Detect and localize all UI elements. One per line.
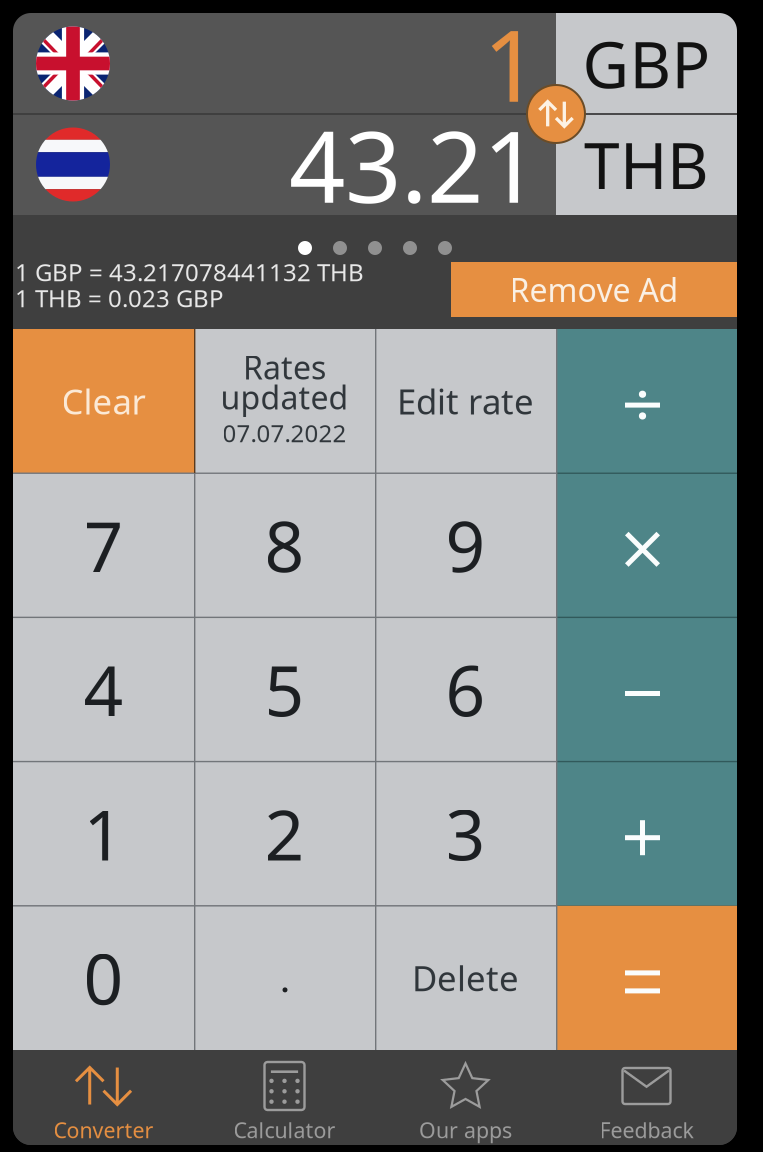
staticText: 1 THB = 0.023 GBP: [15, 282, 224, 314]
staticText: 2: [264, 788, 304, 880]
button[interactable]: 7: [13, 473, 194, 617]
button[interactable]: Delete: [375, 906, 556, 1050]
button[interactable]: 1: [13, 13, 556, 114]
staticText: 1: [483, 0, 539, 129]
staticText: Our apps: [419, 1116, 512, 1144]
staticText: 7: [83, 499, 123, 591]
staticText: Converter: [53, 1116, 153, 1144]
button[interactable]: Remove Ad: [451, 262, 737, 317]
button[interactable]: 3: [375, 762, 556, 906]
staticText: Feedback: [599, 1116, 693, 1144]
button[interactable]: 5: [194, 617, 375, 762]
button[interactable]: Divide: [556, 329, 737, 473]
button[interactable]: Edit rate: [375, 329, 556, 473]
staticText: Delete: [412, 955, 519, 1001]
button[interactable]: 0: [13, 906, 194, 1050]
staticText: updated: [220, 376, 348, 418]
button[interactable]: Our apps: [375, 1050, 556, 1145]
button[interactable]: 2: [194, 762, 375, 906]
button[interactable]: 43.21: [13, 114, 556, 215]
staticText: 8: [264, 499, 304, 591]
staticText: 5: [264, 643, 304, 736]
button[interactable]: THB: [556, 114, 737, 215]
button[interactable]: Equals: [556, 906, 737, 1050]
staticText: Edit rate: [397, 378, 534, 424]
staticText: 0: [83, 932, 123, 1024]
button[interactable]: 1: [13, 762, 194, 906]
staticText: Calculator: [233, 1116, 335, 1144]
staticText: 3: [445, 788, 485, 880]
button[interactable]: Swap currencies: [526, 84, 586, 144]
staticText: THB: [584, 122, 709, 207]
button[interactable]: Minus: [556, 617, 737, 762]
button[interactable]: Converter: [13, 1050, 194, 1145]
button[interactable]: Calculator: [194, 1050, 375, 1145]
staticText: GBP: [582, 21, 710, 106]
button[interactable]: Feedback: [556, 1050, 737, 1145]
staticText: 9: [445, 499, 485, 591]
staticText: 1: [83, 788, 123, 880]
staticText: 4: [83, 643, 123, 736]
button[interactable]: Multiply: [556, 473, 737, 617]
button[interactable]: Rates: [194, 329, 375, 473]
button[interactable]: 9: [375, 473, 556, 617]
staticText: 6: [445, 643, 485, 736]
staticText: 07.07.2022: [222, 417, 346, 449]
staticText: 1 GBP = 43.217078441132 THB: [15, 256, 364, 288]
button[interactable]: Decimal point: [194, 906, 375, 1050]
button[interactable]: 4: [13, 617, 194, 762]
button[interactable]: GBP: [556, 13, 737, 114]
button[interactable]: Plus: [556, 762, 737, 906]
button[interactable]: Clear: [13, 329, 194, 473]
staticText: Rates: [243, 346, 326, 388]
button[interactable]: 6: [375, 617, 556, 762]
staticText: Clear: [61, 378, 145, 424]
staticText: 43.21: [289, 99, 539, 230]
staticText: Remove Ad: [509, 268, 678, 311]
button[interactable]: 8: [194, 473, 375, 617]
